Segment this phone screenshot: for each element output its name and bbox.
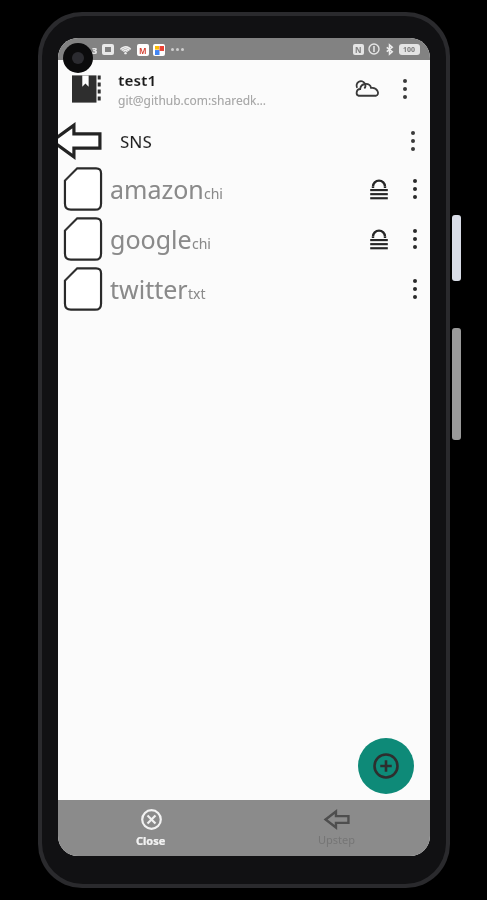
staticText: Close [136,833,166,848]
button[interactable]: Sync [348,69,388,109]
button[interactable]: More options [400,224,430,254]
button[interactable]: More options [388,72,422,106]
staticText: test1 [118,70,157,90]
button[interactable]: More options [400,174,430,204]
button[interactable]: Back [58,118,430,164]
button[interactable]: Add [358,738,414,794]
button[interactable]: Close [58,800,244,856]
staticText: amazon [110,172,204,206]
staticText: txt [188,284,206,303]
staticText: 3 [92,44,98,56]
staticText: M [139,45,147,56]
button[interactable]: More options [400,274,430,304]
button[interactable]: amazon [58,164,430,214]
button[interactable]: test1 [58,60,430,118]
staticText: Upstep [318,832,356,847]
staticText: git@github.com:sharedk… [118,92,266,108]
staticText: SNS [120,130,152,153]
staticText: chi [204,184,223,203]
button[interactable]: More options [396,124,430,158]
staticText: twitter [110,272,188,306]
staticText: google [110,222,192,256]
staticText: 100 [403,45,416,55]
staticText: N [355,44,362,55]
staticText: chi [192,234,211,253]
other: Back [58,118,120,164]
button[interactable]: Upstep [244,800,430,856]
button[interactable]: twitter [58,264,430,314]
button[interactable]: google [58,214,430,264]
